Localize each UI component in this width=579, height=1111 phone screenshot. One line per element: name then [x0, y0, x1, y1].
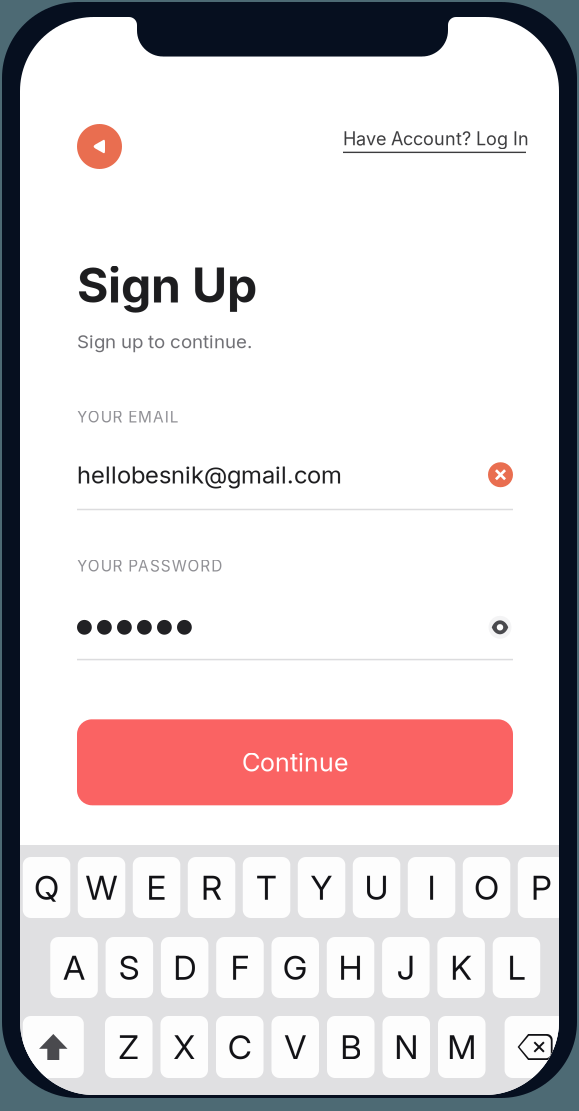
staticText: W: [85, 867, 117, 908]
button[interactable]: H: [327, 937, 374, 998]
staticText: K: [450, 947, 472, 988]
staticText: YOUR EMAIL: [77, 408, 179, 426]
button[interactable]: B: [327, 1016, 374, 1078]
button[interactable]: F: [216, 937, 264, 998]
button[interactable]: E: [133, 857, 180, 918]
staticText: Y: [311, 867, 333, 908]
button[interactable]: Z: [105, 1016, 152, 1078]
button[interactable]: U: [353, 857, 400, 918]
staticText: E: [147, 867, 167, 908]
button[interactable]: A: [50, 937, 98, 998]
staticText: R: [201, 867, 222, 908]
button[interactable]: V: [271, 1016, 319, 1078]
button[interactable]: W: [78, 857, 125, 918]
button[interactable]: C: [216, 1016, 263, 1078]
staticText: B: [340, 1027, 361, 1067]
button[interactable]: M: [438, 1016, 485, 1078]
button[interactable]: O: [463, 857, 510, 918]
button[interactable]: Clear email: [488, 462, 513, 487]
button[interactable]: T: [243, 857, 290, 918]
button[interactable]: D: [161, 937, 208, 998]
staticText: U: [365, 867, 389, 908]
button[interactable]: K: [437, 937, 485, 998]
staticText: Have Account? Log In: [343, 128, 529, 150]
button[interactable]: S: [106, 937, 153, 998]
staticText: G: [283, 947, 308, 988]
button[interactable]: Have Account? Log In: [330, 134, 513, 159]
staticText: J: [397, 947, 415, 988]
staticText: V: [284, 1027, 306, 1067]
button[interactable]: I: [408, 857, 455, 918]
button[interactable]: J: [382, 937, 430, 998]
staticText: hellobesnik@gmail.com: [77, 460, 342, 489]
staticText: Z: [118, 1027, 139, 1067]
staticText: X: [173, 1027, 195, 1067]
staticText: D: [173, 947, 196, 988]
staticText: YOUR PASSWORD: [77, 557, 222, 575]
button[interactable]: R: [188, 857, 235, 918]
staticText: A: [63, 947, 85, 988]
button[interactable]: Continue: [77, 719, 513, 805]
staticText: Continue: [242, 747, 348, 778]
staticText: O: [474, 867, 499, 908]
staticText: T: [256, 867, 277, 908]
button[interactable]: X: [160, 1016, 208, 1078]
staticText: H: [339, 947, 363, 988]
button[interactable]: G: [271, 937, 319, 998]
button[interactable]: Show password: [487, 615, 513, 639]
staticText: L: [507, 947, 525, 988]
staticText: Q: [34, 867, 59, 908]
button[interactable]: Y: [298, 857, 345, 918]
button[interactable]: P: [518, 857, 565, 918]
staticText: Sign up to continue.: [77, 330, 252, 353]
button[interactable]: Q: [23, 857, 70, 918]
staticText: N: [394, 1027, 418, 1067]
staticText: F: [230, 947, 249, 988]
button[interactable]: Back: [77, 124, 122, 169]
staticText: M: [447, 1027, 476, 1067]
staticText: S: [119, 947, 140, 988]
button[interactable]: N: [382, 1016, 430, 1078]
button[interactable]: L: [493, 937, 540, 998]
staticText: P: [531, 867, 552, 908]
button[interactable]: Delete: [505, 1016, 566, 1078]
staticText: Sign Up: [77, 256, 257, 314]
button[interactable]: Shift: [23, 1016, 84, 1078]
staticText: C: [228, 1027, 252, 1067]
staticText: I: [428, 867, 436, 908]
